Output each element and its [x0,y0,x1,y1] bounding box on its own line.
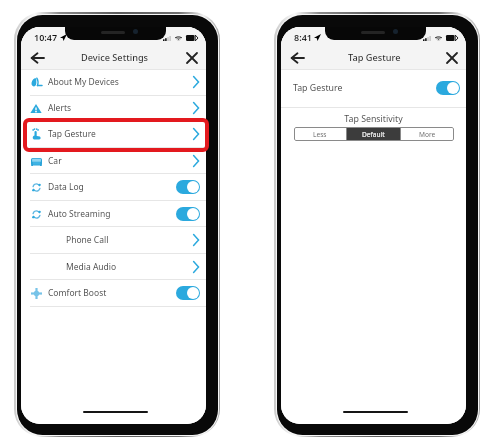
button[interactable] [176,207,200,221]
button[interactable]: Data Log [21,173,206,200]
staticText: 10:47 [34,31,58,43]
button[interactable]: Alerts [21,95,206,121]
staticText: Car [48,155,62,167]
staticText: Data Log [48,181,84,193]
button[interactable] [176,286,200,300]
button[interactable] [176,180,200,194]
staticText: Media Audio [66,261,117,273]
button[interactable]: Close [182,48,202,68]
button[interactable]: Media Audio [21,253,206,280]
button[interactable] [436,81,460,95]
button[interactable]: Comfort Boost [21,279,206,306]
staticText: Comfort Boost [48,287,107,299]
button[interactable]: Phone Call [21,226,206,253]
button[interactable]: About My Devices [21,69,206,95]
button[interactable]: Tap Gesture [21,121,206,147]
button[interactable]: Back [287,48,307,68]
button[interactable]: Car [21,147,206,174]
button[interactable]: More [401,127,454,141]
staticText: 8:41 [294,31,312,43]
button[interactable]: Less [294,127,346,141]
button[interactable]: Default [347,127,400,141]
staticText: Default [362,130,385,139]
staticText: Alerts [48,102,72,114]
staticText: Device Settings [81,51,149,64]
staticText: Less [313,130,327,139]
staticText: Tap Gesture [48,128,96,140]
staticText: Phone Call [66,234,109,246]
button[interactable]: Back [27,48,47,68]
staticText: Auto Streaming [48,208,111,220]
button[interactable]: Close [442,48,462,68]
button[interactable]: Auto Streaming [21,200,206,227]
button[interactable]: Tap Gesture [281,69,466,107]
staticText: Tap Sensitivity [281,113,466,125]
staticText: About My Devices [48,76,119,88]
staticText: Tap Gesture [348,51,401,64]
staticText: Tap Gesture [293,82,343,94]
staticText: More [419,130,436,139]
